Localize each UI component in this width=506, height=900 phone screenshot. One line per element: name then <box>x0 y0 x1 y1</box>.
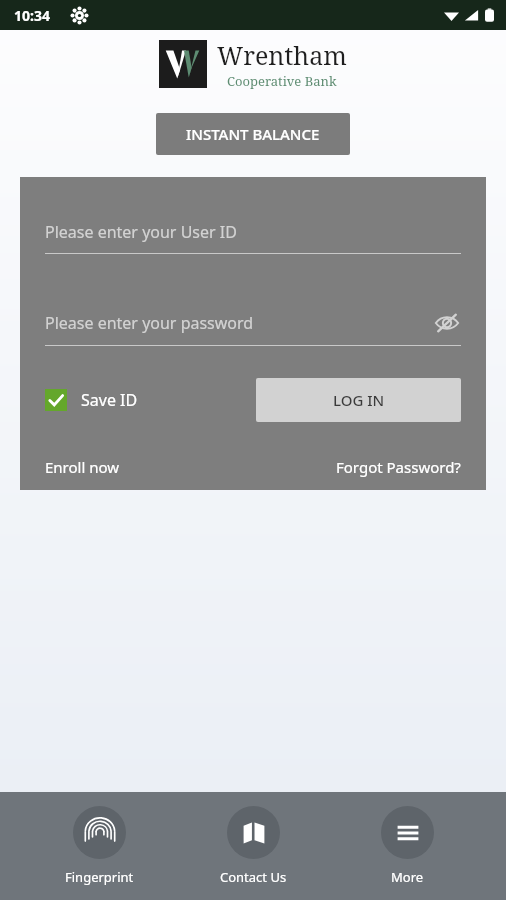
staticText: 10:34 <box>14 6 50 25</box>
button[interactable]: INSTANT BALANCE <box>156 113 350 155</box>
button[interactable]: Contact Us <box>198 800 308 892</box>
staticText: Please enter your User ID <box>45 221 237 243</box>
button[interactable]: LOG IN <box>256 378 461 422</box>
button[interactable]: Forgot Password? <box>336 457 461 477</box>
staticText: Fingerprint <box>65 868 134 886</box>
staticText: Save ID <box>81 389 138 411</box>
staticText: INSTANT BALANCE <box>186 124 320 144</box>
button[interactable]: Save ID <box>45 389 138 411</box>
button[interactable]: Fingerprint <box>44 800 154 892</box>
button[interactable]: Enroll now <box>45 457 120 477</box>
staticText: LOG IN <box>333 390 385 410</box>
button[interactable]: Show password <box>433 309 461 337</box>
staticText: Cooperative Bank <box>227 72 337 90</box>
staticText: Forgot Password? <box>336 457 461 477</box>
button[interactable]: More <box>352 800 462 892</box>
staticText: Enroll now <box>45 457 120 477</box>
staticText: More <box>391 868 424 886</box>
staticText: Please enter your password <box>45 312 433 334</box>
staticText: Contact Us <box>220 868 287 886</box>
staticText: Wrentham <box>217 38 347 72</box>
